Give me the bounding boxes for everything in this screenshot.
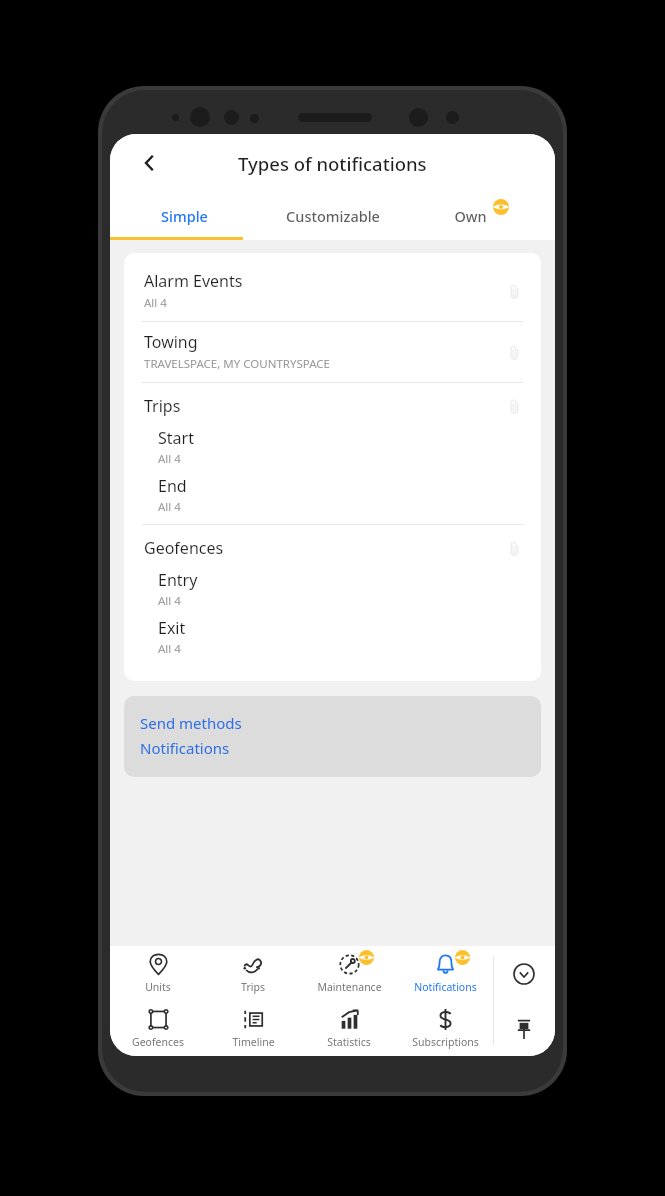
button[interactable]: Units: [110, 946, 205, 1001]
staticText: Timeline: [232, 1035, 275, 1049]
button[interactable]: Customizable: [259, 192, 407, 240]
button[interactable]: Simple: [110, 192, 259, 240]
staticText: Subscriptions: [412, 1035, 479, 1049]
staticText: Types of notifications: [238, 151, 427, 176]
staticText: Maintenance: [317, 980, 382, 994]
button[interactable]: Send methods: [124, 696, 541, 777]
staticText: Own: [454, 206, 487, 226]
staticText: All 4: [144, 295, 167, 311]
button[interactable]: Towing: [124, 322, 541, 382]
staticText: TRAVELSPACE, MY COUNTRYSPACE: [144, 356, 330, 372]
staticText: Geofences: [144, 537, 501, 559]
button[interactable]: Expand: [493, 946, 555, 1001]
button[interactable]: Back: [132, 145, 168, 181]
button[interactable]: Attach: [501, 278, 527, 304]
staticText: Exit: [158, 617, 186, 639]
button[interactable]: Alarm Events: [124, 261, 541, 321]
staticText: All 4: [158, 641, 181, 657]
button[interactable]: Attach: [501, 535, 527, 561]
button[interactable]: Entry: [124, 563, 541, 611]
staticText: Units: [145, 980, 171, 994]
button[interactable]: Geofences: [124, 525, 541, 563]
button[interactable]: Attach: [501, 339, 527, 365]
staticText: All 4: [158, 593, 181, 609]
staticText: Trips: [144, 395, 501, 417]
button[interactable]: Trips: [205, 946, 301, 1001]
staticText: All 4: [158, 499, 181, 515]
staticText: Statistics: [327, 1035, 371, 1049]
staticText: End: [158, 475, 187, 497]
button[interactable]: End: [124, 469, 541, 517]
staticText: Start: [158, 427, 194, 449]
staticText: Send methods: [140, 713, 242, 733]
button[interactable]: Subscriptions: [397, 1001, 493, 1056]
button[interactable]: Trips: [124, 383, 541, 421]
button[interactable]: Statistics: [301, 1001, 397, 1056]
staticText: Geofences: [132, 1035, 184, 1049]
button[interactable]: Start: [124, 421, 541, 469]
staticText: Customizable: [286, 206, 380, 226]
button[interactable]: Maintenance: [301, 946, 397, 1001]
button[interactable]: Exit: [124, 611, 541, 659]
button[interactable]: Pin: [493, 1001, 555, 1056]
button[interactable]: Timeline: [205, 1001, 301, 1056]
button[interactable]: Own: [407, 192, 555, 240]
button[interactable]: Geofences: [110, 1001, 205, 1056]
button[interactable]: Attach: [501, 393, 527, 419]
staticText: Alarm Events: [144, 270, 243, 292]
staticText: All 4: [158, 451, 181, 467]
staticText: Entry: [158, 569, 198, 591]
staticText: Notifications: [414, 980, 477, 994]
staticText: Simple: [161, 206, 208, 226]
staticText: Towing: [144, 331, 198, 353]
button[interactable]: Notifications: [397, 946, 493, 1001]
staticText: Trips: [241, 980, 265, 994]
staticText: Notifications: [140, 738, 230, 758]
